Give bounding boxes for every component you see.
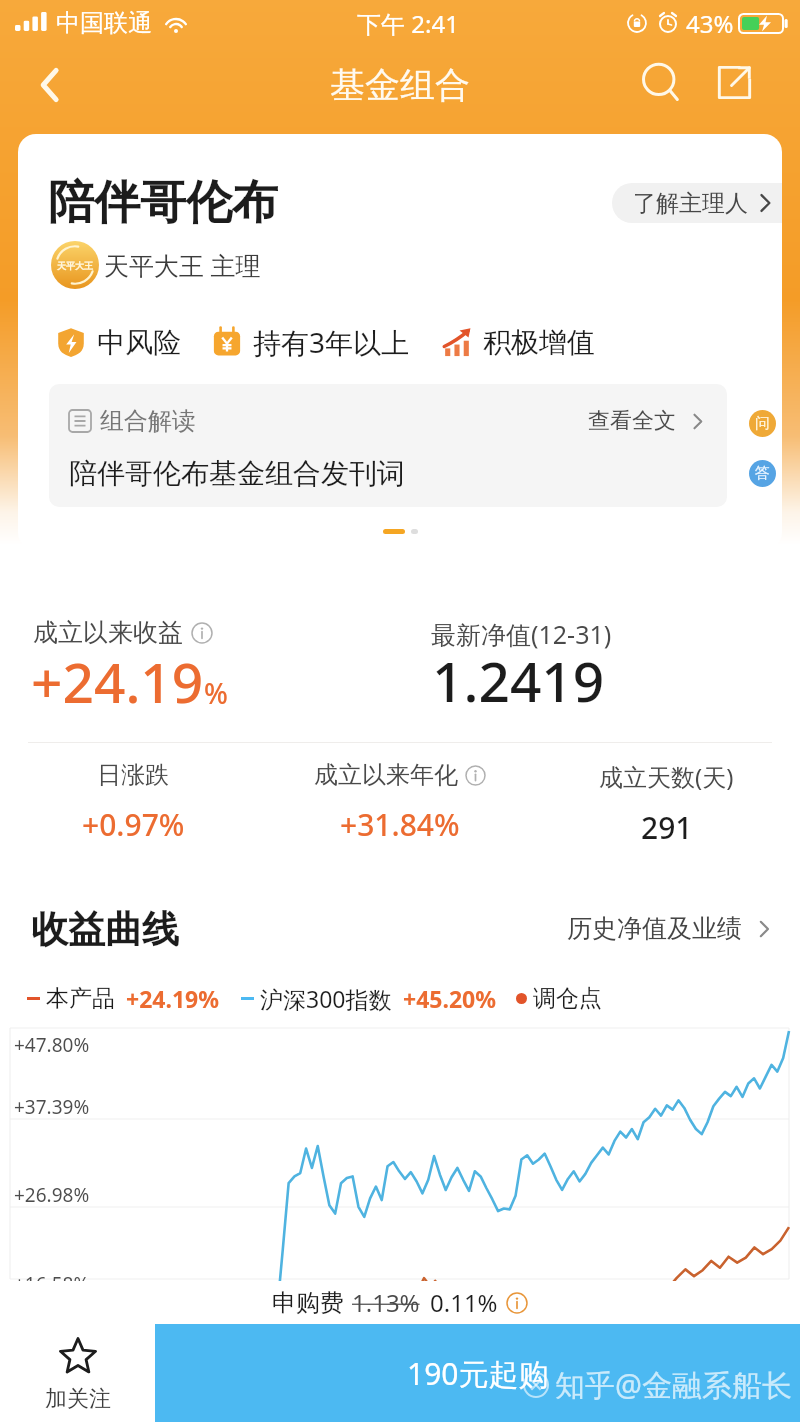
staticText: +37.39% bbox=[14, 1094, 90, 1120]
staticText: 0.11% bbox=[430, 1286, 498, 1319]
staticText: 成立天数(天) bbox=[599, 760, 734, 793]
button[interactable]: 190元起购 bbox=[155, 1324, 800, 1422]
staticText: 下午 2:41 bbox=[357, 7, 459, 40]
staticText: 1.2419 bbox=[432, 643, 605, 718]
staticText: 知乎@金融系船长 bbox=[555, 1364, 792, 1405]
staticText: 积极增值 bbox=[483, 325, 595, 360]
staticText: 基金组合 bbox=[330, 63, 470, 107]
staticText: 答 bbox=[755, 464, 770, 483]
staticText: +24.19% bbox=[126, 983, 219, 1014]
staticText: +16.58% bbox=[14, 1271, 90, 1297]
staticText: 沪深300指数 bbox=[260, 983, 392, 1014]
button[interactable]: Back bbox=[26, 61, 74, 109]
button[interactable]: 历史净值及业绩 bbox=[567, 913, 774, 944]
staticText: 成立以来收益 bbox=[33, 617, 183, 648]
staticText: 1.13% bbox=[352, 1286, 420, 1319]
staticText: 加关注 bbox=[45, 1385, 111, 1413]
staticText: 最新净值(12-31) bbox=[431, 617, 612, 651]
staticText: 中国联通 bbox=[56, 8, 152, 38]
staticText: 本产品 bbox=[46, 984, 115, 1013]
staticText: 查看全文 bbox=[588, 407, 676, 435]
staticText: 190元起购 bbox=[407, 1353, 549, 1394]
staticText: +45.20% bbox=[403, 983, 496, 1014]
button[interactable]: 组合解读 bbox=[49, 384, 727, 507]
staticText: 291 bbox=[641, 807, 693, 848]
staticText: 成立以来年化 bbox=[314, 760, 458, 790]
staticText: 持有3年以上 bbox=[253, 323, 410, 361]
staticText: 申购费 bbox=[272, 1288, 344, 1318]
staticText: +47.80% bbox=[14, 1032, 90, 1058]
staticText: +24.19 bbox=[31, 644, 204, 719]
button[interactable]: Search bbox=[637, 58, 685, 106]
staticText: 了解主理人 bbox=[633, 189, 748, 218]
staticText: 调仓点 bbox=[533, 984, 602, 1013]
staticText: % bbox=[204, 674, 228, 712]
staticText: 组合解读 bbox=[100, 406, 196, 436]
staticText: 问 bbox=[755, 414, 770, 433]
staticText: 43% bbox=[686, 7, 734, 40]
button[interactable]: 加关注 bbox=[0, 1324, 155, 1422]
staticText: 历史净值及业绩 bbox=[567, 913, 742, 944]
staticText: 中风险 bbox=[97, 325, 181, 360]
staticText: 天平大王 主理 bbox=[104, 248, 261, 282]
staticText: 天平大王 bbox=[57, 260, 93, 271]
staticText: +0.97% bbox=[82, 804, 185, 845]
staticText: 陪伴哥伦布 bbox=[48, 174, 278, 232]
staticText: 陪伴哥伦布基金组合发刊词 bbox=[69, 456, 405, 491]
button[interactable]: Answer bbox=[749, 460, 776, 487]
button[interactable]: 了解主理人 bbox=[612, 183, 782, 223]
staticText: 日涨跌 bbox=[97, 760, 169, 790]
staticText: 收益曲线 bbox=[31, 906, 179, 953]
button[interactable]: Share bbox=[710, 58, 758, 106]
button[interactable]: Ask bbox=[749, 410, 776, 437]
staticText: +26.98% bbox=[14, 1182, 90, 1208]
staticText: +31.84% bbox=[340, 804, 460, 845]
